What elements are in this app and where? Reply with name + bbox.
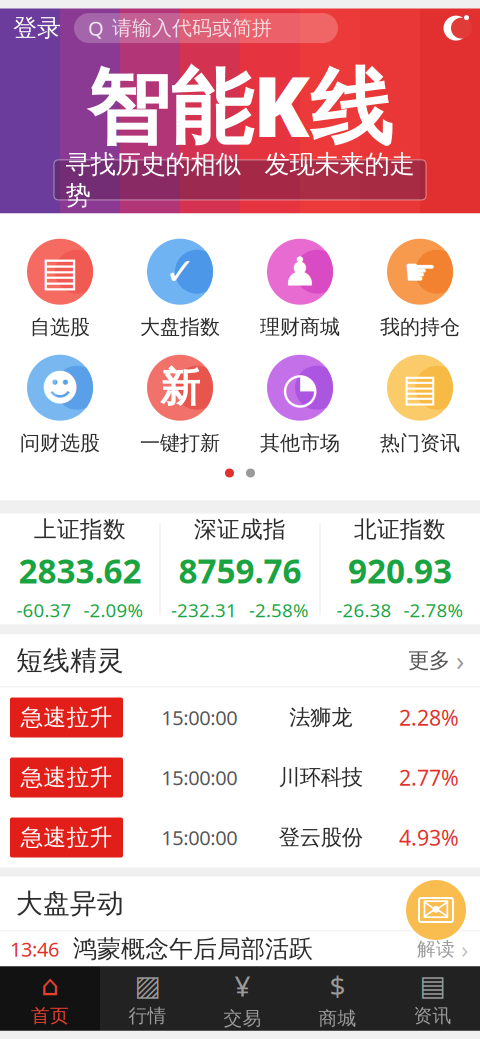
button[interactable]: ▨ <box>100 966 195 1030</box>
button[interactable]: ♟ <box>240 231 360 347</box>
staticText: 深证成指 <box>194 516 286 543</box>
button[interactable]: 北证指数 <box>320 515 479 623</box>
staticText: 请输入代码或简拼 <box>112 16 272 40</box>
staticText: 急速拉升 <box>20 704 112 731</box>
button[interactable]: 13:46 <box>0 931 480 966</box>
staticText: ▤ <box>419 970 445 1001</box>
button[interactable]: ¥ <box>195 966 290 1030</box>
button[interactable]: 短线精灵 <box>0 634 480 686</box>
staticText: -60.37 <box>16 598 71 622</box>
staticText: ◔ <box>281 363 318 412</box>
staticText: 理财商城 <box>260 315 340 339</box>
button[interactable]: ⌂ <box>0 966 100 1030</box>
button[interactable]: ▤ <box>360 347 480 463</box>
staticText: › <box>456 643 464 678</box>
staticText: 自选股 <box>30 315 90 339</box>
staticText: 2.77% <box>399 763 459 792</box>
staticText: 920.93 <box>348 548 452 593</box>
staticText: 急速拉升 <box>20 764 112 791</box>
staticText: 一键打新 <box>140 431 220 455</box>
staticText: -2.09% <box>83 598 143 622</box>
staticText: 8759.76 <box>178 548 301 593</box>
staticText: 2.28% <box>399 703 459 732</box>
staticText: 其他市场 <box>260 431 340 455</box>
staticText: 15:00:00 <box>161 824 237 851</box>
staticText: Q <box>88 15 104 41</box>
staticText: 短线精灵 <box>16 644 124 677</box>
staticText: 行情 <box>128 1004 166 1027</box>
staticText: 13:46 <box>10 936 59 962</box>
button[interactable]: 夜间模式 <box>432 6 480 50</box>
staticText: 急速拉升 <box>20 824 112 851</box>
staticText: 北证指数 <box>354 516 446 543</box>
staticText: 商城 <box>318 1007 356 1030</box>
button[interactable]: 消息 <box>401 875 471 945</box>
staticText: 15:00:00 <box>161 764 237 791</box>
button[interactable]: 登录 <box>0 6 74 50</box>
button[interactable]: ▤ <box>385 966 480 1030</box>
staticText: 解读 <box>417 937 455 960</box>
staticText: 更多 <box>408 647 450 674</box>
button[interactable]: ◔ <box>240 347 360 463</box>
staticText: › <box>461 933 468 965</box>
staticText: 川环科技 <box>279 764 363 791</box>
button[interactable]: 急速拉升 <box>0 747 480 807</box>
staticText: 智能K线 <box>87 50 393 160</box>
button[interactable]: $ <box>290 966 385 1030</box>
staticText: 大盘指数 <box>140 315 220 339</box>
staticText: 15:00:00 <box>161 704 237 731</box>
staticText: ▨ <box>134 970 160 1001</box>
staticText: 大盘异动 <box>16 887 124 920</box>
staticText: 首页 <box>31 1004 69 1027</box>
staticText: 热门资讯 <box>380 431 460 455</box>
staticText: 交易 <box>223 1007 261 1030</box>
staticText: ▤ <box>41 249 79 294</box>
staticText: ▤ <box>402 366 437 409</box>
staticText: 新 <box>160 363 200 412</box>
staticText: $ <box>329 967 345 1004</box>
staticText: 寻找历史的相似 发现未来的走势 <box>65 149 414 211</box>
button[interactable]: ☛ <box>360 231 480 347</box>
button[interactable]: 深证成指 <box>160 515 319 623</box>
staticText: ✉ <box>421 890 450 930</box>
staticText: ☻ <box>40 366 79 409</box>
staticText: -232.31 <box>171 598 237 622</box>
button[interactable]: ▤ <box>0 231 120 347</box>
staticText: 4.93% <box>399 823 459 852</box>
staticText: -2.58% <box>249 598 309 622</box>
staticText: ¥ <box>234 967 250 1004</box>
staticText: 资讯 <box>413 1004 451 1027</box>
button[interactable]: 急速拉升 <box>0 807 480 867</box>
staticText: -2.78% <box>403 598 463 622</box>
staticText: 鸿蒙概念午后局部活跃 <box>73 934 313 964</box>
staticText: ☛ <box>403 250 436 293</box>
staticText: -26.38 <box>336 598 391 622</box>
staticText: 法狮龙 <box>289 704 352 731</box>
staticText: ✓ <box>164 250 195 293</box>
staticText: 问财选股 <box>20 431 100 455</box>
staticText: 上证指数 <box>34 516 126 543</box>
button[interactable]: ✓ <box>120 231 240 347</box>
staticText: 我的持仓 <box>380 315 460 339</box>
staticText: 登录 <box>13 13 61 43</box>
staticText: 2833.62 <box>18 548 141 593</box>
staticText: 登云股份 <box>279 824 363 851</box>
button[interactable]: 急速拉升 <box>0 687 480 747</box>
button[interactable]: 搜索 <box>74 13 338 43</box>
button[interactable]: 新 <box>120 347 240 463</box>
button[interactable]: ☻ <box>0 347 120 463</box>
button[interactable]: 上证指数 <box>0 515 159 623</box>
staticText: ⌂ <box>41 970 59 1001</box>
staticText: ♟ <box>282 249 318 294</box>
